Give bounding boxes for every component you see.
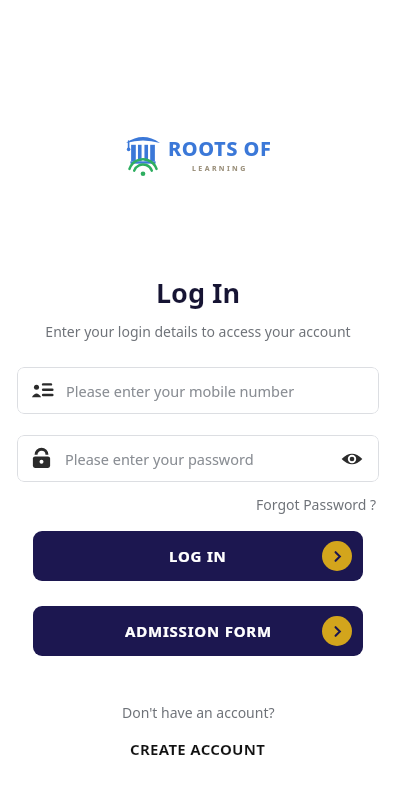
button[interactable]: Show password	[339, 446, 365, 472]
button[interactable]: Please enter your password	[17, 435, 379, 482]
staticText: ROOTS OF	[168, 135, 272, 162]
staticText: ADMISSION FORM	[125, 621, 272, 641]
staticText: Enter your login details to access your …	[45, 322, 351, 341]
staticText: Log In	[156, 274, 241, 311]
button[interactable]: ADMISSION FORM	[33, 606, 363, 656]
staticText: Don't have an account?	[122, 703, 275, 722]
button[interactable]: LOG IN	[33, 531, 363, 581]
staticText: LEARNING	[192, 164, 248, 174]
staticText: LOG IN	[169, 546, 227, 566]
button[interactable]: Forgot Password ?	[254, 493, 379, 516]
staticText: CREATE ACCOUNT	[130, 739, 266, 759]
staticText: Forgot Password ?	[256, 495, 377, 514]
button[interactable]: Please enter your mobile number	[17, 367, 379, 414]
staticText: Please enter your password	[65, 449, 254, 469]
staticText: Please enter your mobile number	[66, 381, 295, 401]
button[interactable]: CREATE ACCOUNT	[126, 737, 270, 761]
